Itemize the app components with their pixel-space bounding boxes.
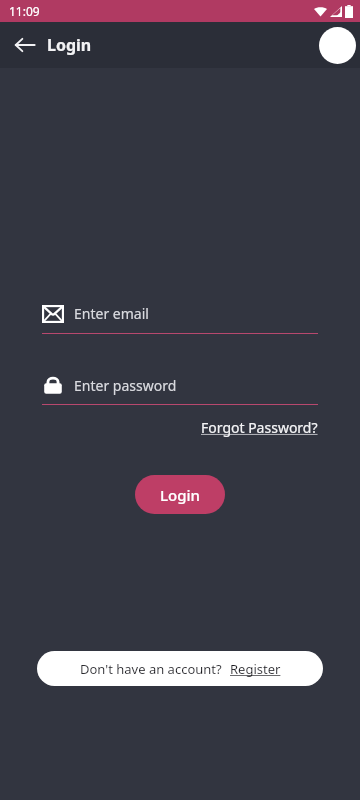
staticText: Enter email [74,304,149,323]
button[interactable]: Forgot Password? [201,415,318,440]
staticText: Register [230,660,281,678]
staticText: Don't have an account? [80,660,222,678]
other: Back [14,34,36,56]
button[interactable]: Profile [317,25,357,65]
button[interactable]: Don't have an account? [37,651,323,686]
button[interactable]: Enter password [42,374,318,396]
button[interactable]: Enter email [42,304,318,323]
staticText: Forgot Password? [201,418,318,437]
button[interactable]: Login [135,475,225,514]
staticText: Login [47,34,92,56]
staticText: Login [160,485,200,505]
button[interactable]: Back [10,28,96,62]
staticText: Enter password [74,376,177,395]
staticText: 11:09 [9,3,40,19]
